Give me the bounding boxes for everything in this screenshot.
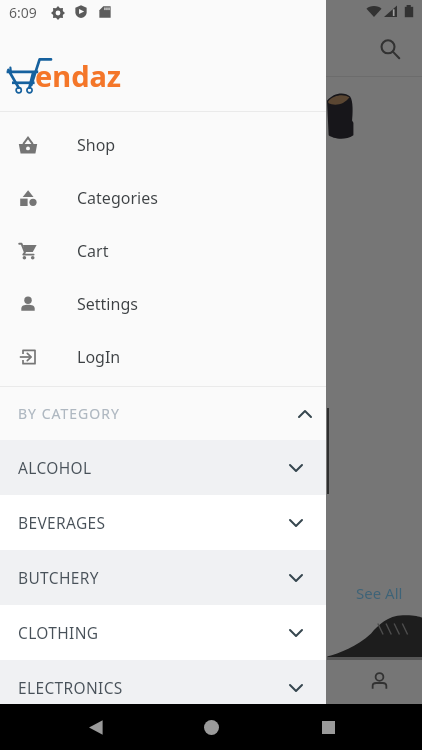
staticText: Cart [77,240,109,262]
button[interactable]: Account [361,663,397,699]
button[interactable]: ALCOHOL [0,440,326,495]
button[interactable]: Recent apps [306,705,350,749]
staticText: BEVERAGES [18,512,106,533]
staticText: BY CATEGORY [18,404,120,423]
staticText: See All [356,583,403,603]
staticText: Categories [77,187,158,209]
button[interactable]: BY CATEGORY [0,387,326,440]
staticText: endaz [35,56,122,95]
staticText: 6:09 [9,3,37,22]
staticText: BUTCHERY [18,567,99,588]
button[interactable]: Back [73,705,117,749]
button[interactable]: Shop [0,118,326,171]
button[interactable]: Categories [0,171,326,224]
button[interactable]: See All [356,583,403,603]
staticText: Settings [77,293,138,315]
staticText: ELECTRONICS [18,677,123,698]
button[interactable]: CLOTHING [0,605,326,660]
staticText: Shop [77,134,116,156]
button[interactable]: Cart [0,224,326,277]
staticText: CLOTHING [18,622,99,643]
button[interactable]: LogIn [0,330,326,383]
button[interactable]: BEVERAGES [0,495,326,550]
button[interactable]: Settings [0,277,326,330]
button[interactable]: Search [372,31,408,67]
button[interactable]: BUTCHERY [0,550,326,605]
button[interactable]: Home [189,705,233,749]
staticText: LogIn [77,346,121,368]
button[interactable]: ELECTRONICS [0,660,326,715]
staticText: ALCOHOL [18,457,92,478]
